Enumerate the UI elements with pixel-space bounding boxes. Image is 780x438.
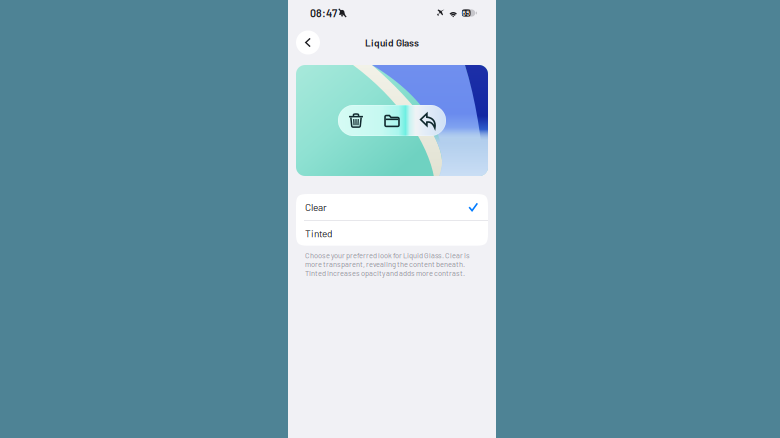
staticText: Clear — [305, 201, 327, 213]
staticText: 08:47 — [310, 7, 337, 19]
button[interactable]: Clear — [296, 194, 488, 220]
button[interactable]: Reply — [410, 105, 446, 136]
button[interactable]: Delete — [338, 105, 374, 136]
button[interactable]: Move to folder — [374, 105, 410, 136]
staticText: Tinted — [305, 227, 332, 239]
button[interactable]: Tinted — [296, 221, 488, 246]
staticText: Liquid Glass — [365, 36, 419, 48]
staticText: Choose your preferred look for Liquid Gl… — [305, 251, 470, 278]
button[interactable]: Back — [296, 30, 320, 54]
staticText: 65 — [462, 9, 470, 17]
